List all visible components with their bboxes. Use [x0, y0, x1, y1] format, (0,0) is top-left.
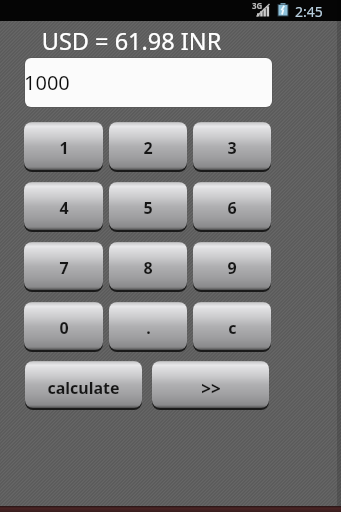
staticText: .: [146, 317, 151, 339]
button[interactable]: 6: [193, 182, 271, 232]
staticText: 3: [227, 137, 237, 159]
button[interactable]: .: [109, 302, 187, 352]
staticText: 8: [143, 257, 153, 279]
staticText: 7: [59, 257, 69, 279]
button[interactable]: >>: [152, 361, 269, 410]
button[interactable]: 8: [109, 242, 187, 292]
staticText: 3G: [252, 0, 263, 11]
button[interactable]: c: [193, 302, 271, 352]
button[interactable]: 7: [24, 242, 103, 292]
staticText: 9: [227, 257, 237, 279]
staticText: 4: [59, 197, 69, 219]
staticText: 1: [59, 137, 69, 159]
staticText: 6: [227, 197, 237, 219]
button[interactable]: 1: [24, 122, 103, 172]
button[interactable]: 9: [193, 242, 271, 292]
staticText: 0: [59, 317, 69, 339]
staticText: >>: [201, 377, 221, 400]
staticText: c: [228, 317, 237, 339]
button[interactable]: 0: [24, 302, 103, 352]
staticText: 2: [143, 137, 153, 159]
button[interactable]: 5: [109, 182, 187, 232]
staticText: 2:45: [295, 2, 323, 21]
staticText: 5: [143, 197, 153, 219]
staticText: calculate: [47, 377, 120, 399]
staticText: USD = 61.98 INR: [0, 25, 263, 57]
button[interactable]: calculate: [25, 361, 142, 410]
staticText: 1000: [25, 69, 70, 96]
button[interactable]: 2: [109, 122, 187, 172]
button[interactable]: 1000: [25, 58, 272, 107]
button[interactable]: 4: [24, 182, 103, 232]
button[interactable]: 3: [193, 122, 271, 172]
